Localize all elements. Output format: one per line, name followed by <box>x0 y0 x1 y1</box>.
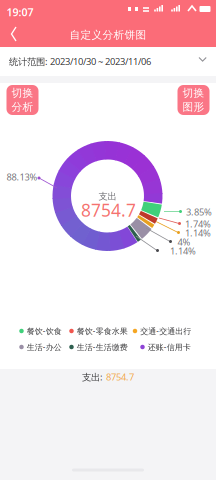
staticText: 支出 <box>98 191 116 202</box>
staticText: 自定义分析饼图 <box>69 28 146 41</box>
staticText: 切换 <box>11 86 33 99</box>
button[interactable]: 餐饮-饮食 <box>19 326 62 336</box>
staticText: 88.13% <box>6 171 37 183</box>
button[interactable]: 还账-信用卡 <box>140 342 191 352</box>
staticText: 生活-办公 <box>27 342 62 352</box>
button[interactable]: 统计范围: 2023/10/30 ~ 2023/11/06 <box>0 47 216 76</box>
staticText: 19:07 <box>6 5 33 19</box>
staticText: 统计范围: 2023/10/30 ~ 2023/11/06 <box>9 55 151 68</box>
staticText: 4% <box>177 236 190 248</box>
staticText: 1.74% <box>185 218 211 230</box>
staticText: 1.14% <box>170 245 196 257</box>
staticText: 8754.7 <box>81 198 136 221</box>
staticText: 生活-生活缴费 <box>77 342 128 352</box>
staticText: 餐饮-饮食 <box>27 326 62 336</box>
button[interactable]: 交通-交通出行 <box>133 326 191 336</box>
staticText: 支出: <box>82 371 103 383</box>
staticText: 还账-信用卡 <box>148 342 191 352</box>
staticText: 3.85% <box>186 206 212 218</box>
button[interactable]: 餐饮-零食水果 <box>69 326 128 336</box>
button[interactable]: 切换 <box>177 85 209 115</box>
staticText: 图形 <box>182 100 204 114</box>
button[interactable]: 切换 <box>6 85 38 115</box>
button[interactable]: 生活-办公 <box>19 342 62 352</box>
staticText: 分析 <box>11 100 33 114</box>
staticText: 1.14% <box>185 227 211 239</box>
staticText: 8754.7 <box>106 371 134 383</box>
button[interactable]: 生活-生活缴费 <box>69 342 128 352</box>
staticText: 交通-交通出行 <box>140 326 191 336</box>
staticText: 餐饮-零食水果 <box>77 326 128 336</box>
staticText: 切换 <box>182 86 204 99</box>
button[interactable]: Back <box>1 21 29 47</box>
